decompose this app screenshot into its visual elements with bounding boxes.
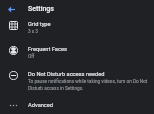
button[interactable]: Grid type bbox=[0, 18, 154, 39]
button[interactable]: Advanced bbox=[0, 98, 154, 114]
staticText: Grid type bbox=[28, 21, 51, 28]
staticText: Advanced bbox=[28, 102, 54, 109]
staticText: To pause notifications while taking vide… bbox=[28, 79, 152, 91]
staticText: Settings bbox=[28, 5, 54, 13]
staticText: Do Not Disturb access needed bbox=[28, 71, 105, 78]
staticText: Off bbox=[28, 54, 35, 60]
button[interactable]: Do Not Disturb access needed bbox=[0, 68, 154, 94]
button[interactable]: Frequent Faces bbox=[0, 43, 154, 64]
staticText: Frequent Faces bbox=[28, 46, 67, 53]
button[interactable]: Navigate up bbox=[4, 2, 19, 17]
staticText: 3 x 3 bbox=[28, 29, 38, 35]
